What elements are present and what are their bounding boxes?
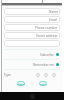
staticText: Clear: [40, 82, 46, 85]
staticText: Name: [49, 10, 58, 14]
button[interactable]: Email: [4, 16, 60, 23]
button[interactable]: [4, 40, 60, 47]
staticText: Street address: [36, 34, 58, 38]
button[interactable]: Clear: [39, 81, 47, 86]
button[interactable]: Choice: [44, 73, 48, 77]
staticText: Subscribe: [40, 53, 54, 57]
staticText: Remember me: [33, 63, 54, 67]
button[interactable]: Remember me: [4, 60, 60, 69]
button[interactable]: Choice: [36, 73, 40, 77]
button[interactable]: Choice: [52, 73, 56, 77]
button[interactable]: Phone number: [4, 24, 60, 31]
staticText: Type: [4, 73, 11, 77]
button[interactable]: Submit: [17, 81, 25, 86]
staticText: Email: [49, 18, 58, 22]
button[interactable]: Subscribe: [4, 50, 60, 59]
staticText: Submit: [17, 82, 25, 85]
button[interactable]: Name: [4, 8, 60, 15]
staticText: Phone number: [35, 26, 58, 30]
button[interactable]: Street address: [4, 32, 60, 39]
